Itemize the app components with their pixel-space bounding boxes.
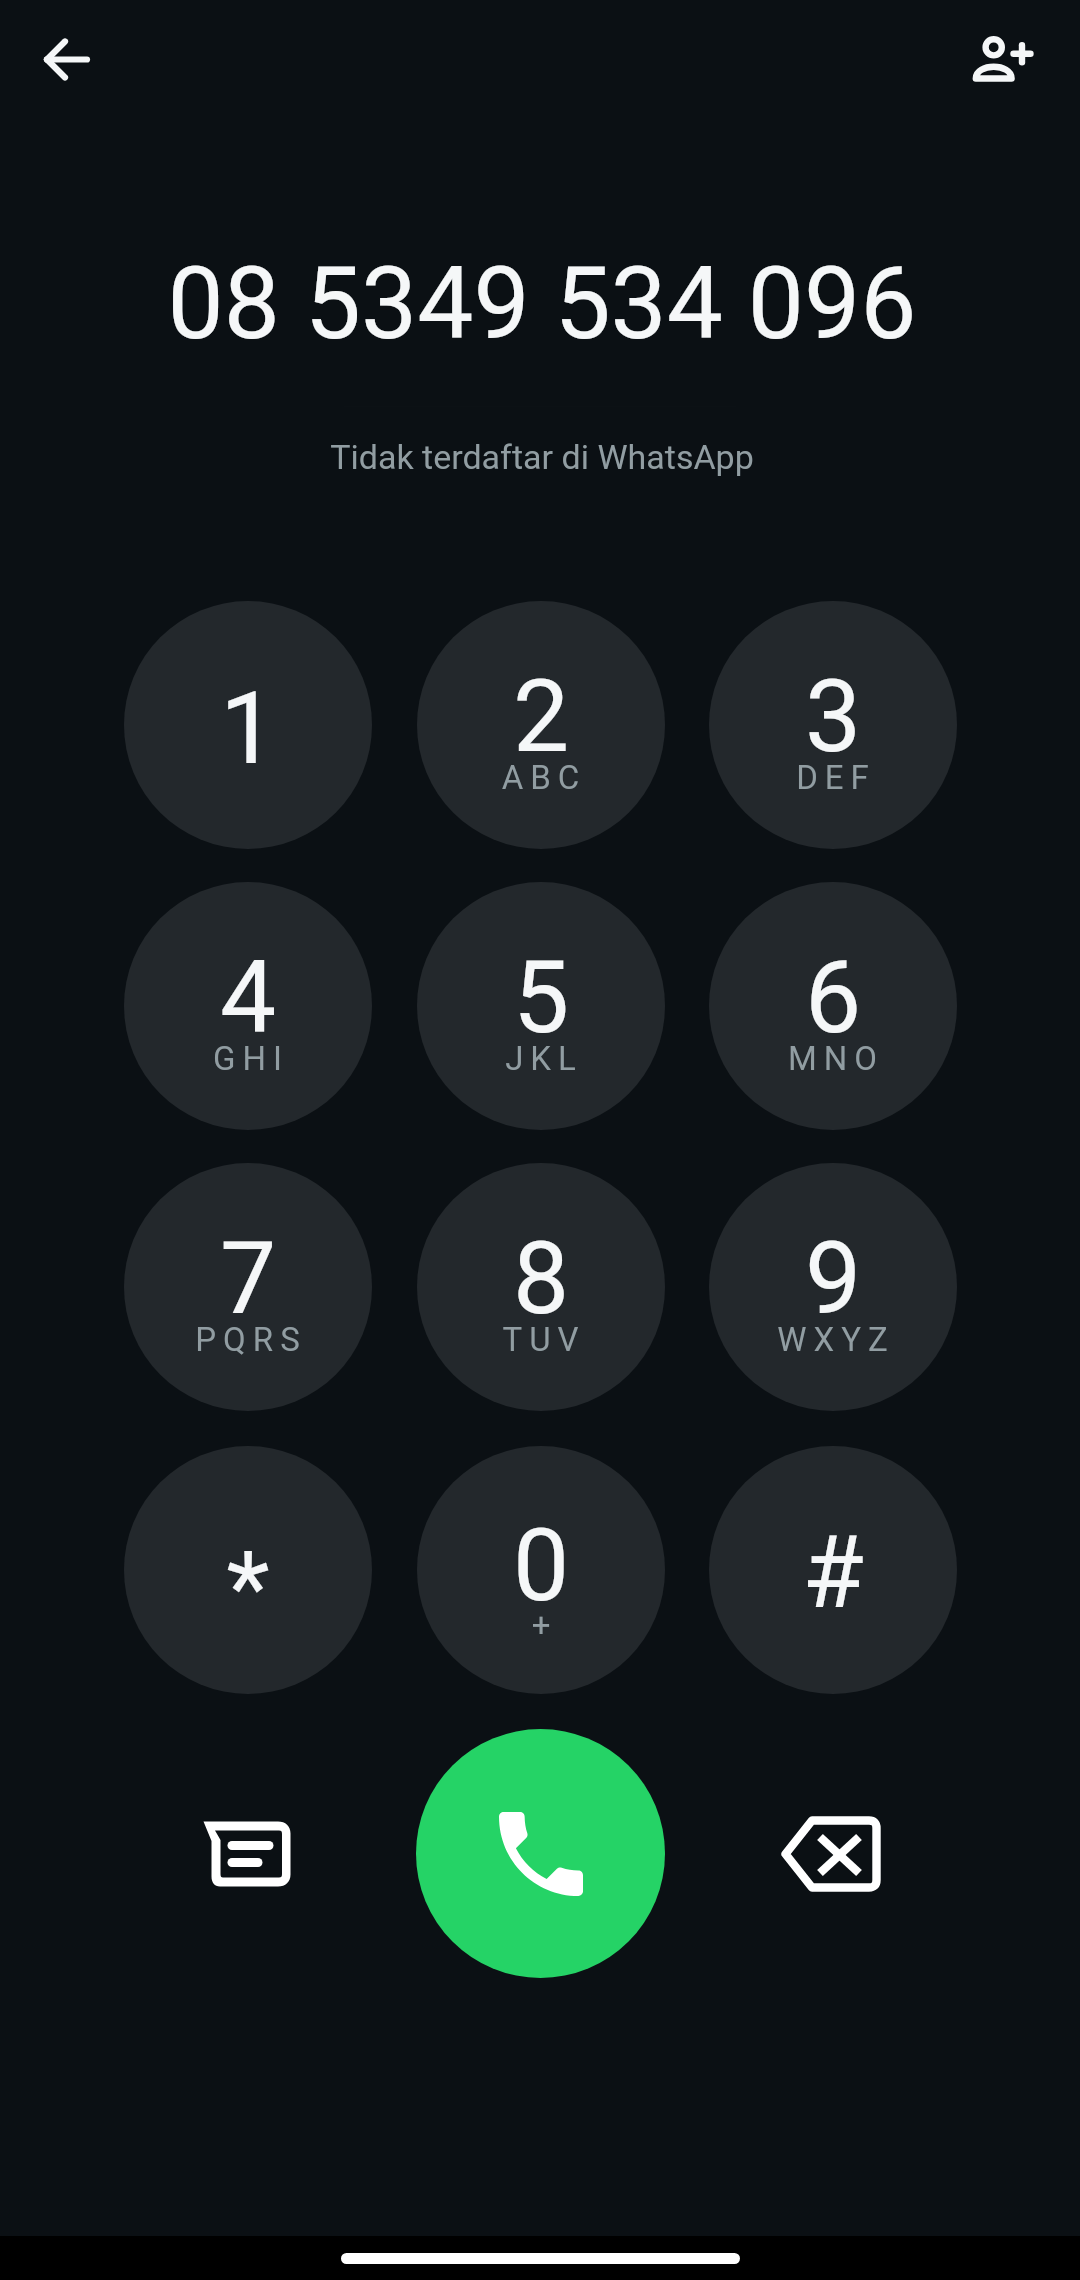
button[interactable]: 9: [709, 1163, 957, 1411]
button[interactable]: 0: [417, 1446, 665, 1694]
staticText: PQRS: [127, 1320, 372, 1359]
button[interactable]: Back: [22, 14, 112, 104]
button[interactable]: 7: [124, 1163, 372, 1411]
staticText: 0: [417, 1507, 665, 1624]
staticText: 4: [124, 939, 372, 1056]
staticText: DEF: [712, 758, 957, 797]
staticText: 6: [709, 939, 957, 1056]
staticText: WXYZ: [712, 1320, 957, 1359]
staticText: *: [124, 1529, 372, 1646]
button[interactable]: #: [709, 1446, 957, 1694]
staticText: TUV: [420, 1320, 665, 1359]
staticText: 5: [417, 939, 665, 1056]
staticText: 9: [709, 1220, 957, 1337]
staticText: Tidak terdaftar di WhatsApp: [2, 437, 1080, 477]
button[interactable]: Add to contacts: [958, 14, 1048, 104]
staticText: GHI: [127, 1039, 372, 1078]
button[interactable]: 4: [124, 882, 372, 1130]
button[interactable]: *: [124, 1446, 372, 1694]
staticText: 1: [124, 670, 372, 787]
staticText: 08 5349 534 096: [2, 245, 1080, 357]
button[interactable]: 5: [417, 882, 665, 1130]
button[interactable]: 1: [124, 601, 372, 849]
staticText: 7: [124, 1220, 372, 1337]
button[interactable]: 2: [417, 601, 665, 849]
staticText: 3: [709, 658, 957, 775]
button[interactable]: 8: [417, 1163, 665, 1411]
staticText: MNO: [712, 1039, 957, 1078]
staticText: #: [709, 1514, 957, 1631]
staticText: 8: [417, 1220, 665, 1337]
staticText: +: [417, 1605, 665, 1644]
button[interactable]: 3: [709, 601, 957, 849]
staticText: ABC: [420, 758, 665, 797]
button[interactable]: 6: [709, 882, 957, 1130]
staticText: JKL: [420, 1039, 665, 1078]
button[interactable]: Backspace: [706, 1729, 956, 1978]
button[interactable]: Send message: [122, 1729, 372, 1978]
button[interactable]: Call: [416, 1729, 665, 1978]
staticText: 2: [417, 658, 665, 775]
